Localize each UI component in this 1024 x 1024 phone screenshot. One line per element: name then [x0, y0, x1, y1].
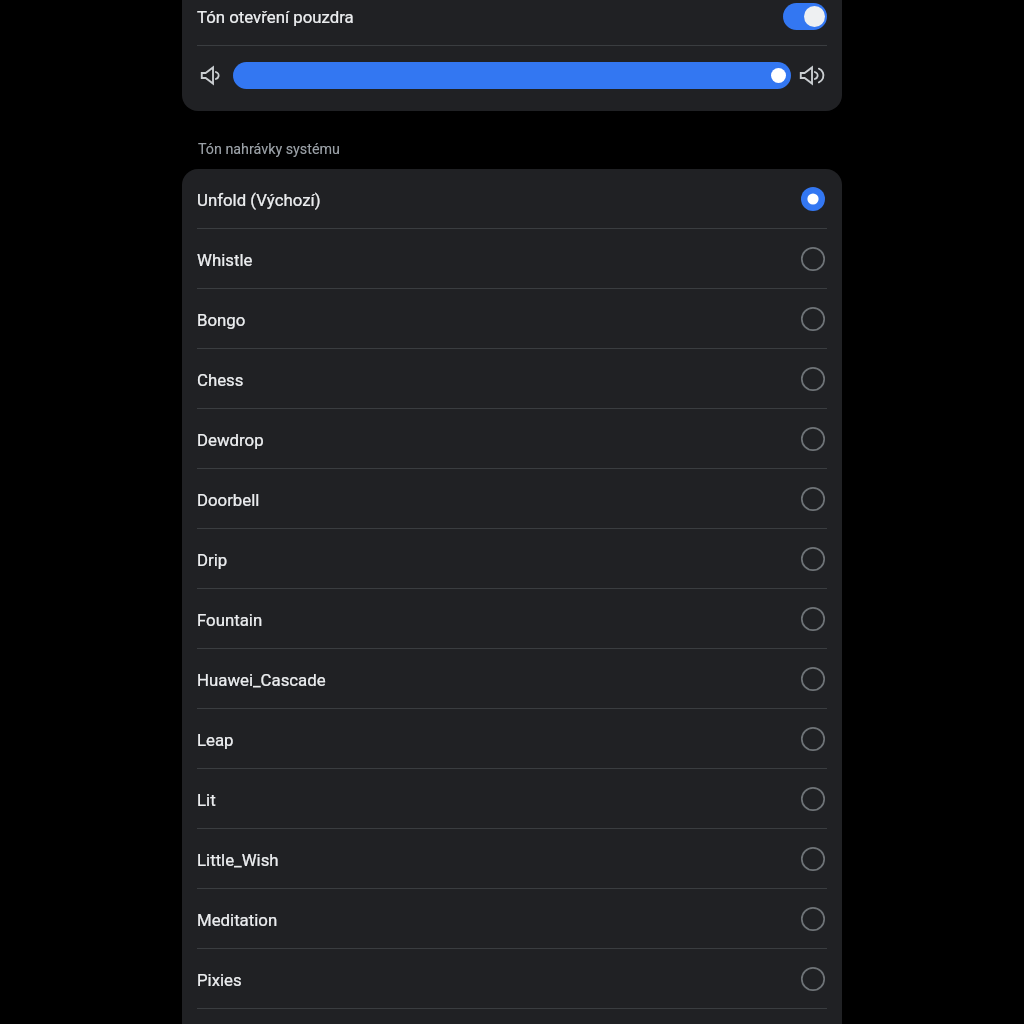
button[interactable]: Pixies — [182, 949, 842, 1009]
staticText: Chess — [197, 370, 793, 390]
button[interactable]: Select Dewdrop — [793, 419, 833, 459]
button[interactable]: Select Lit — [793, 779, 833, 819]
button[interactable]: Fountain — [182, 589, 842, 649]
staticText: Bongo — [197, 310, 793, 330]
button[interactable]: Drip — [182, 529, 842, 589]
button[interactable]: Little_Wish — [182, 829, 842, 889]
button[interactable]: Select Whistle — [793, 239, 833, 279]
button[interactable]: Select Unfold (Výchozí) — [793, 179, 833, 219]
button[interactable]: Dewdrop — [182, 409, 842, 469]
button[interactable]: Select Huawei_Cascade — [793, 659, 833, 699]
button[interactable]: Select Chess — [793, 359, 833, 399]
staticText: Whistle — [197, 250, 793, 270]
button[interactable]: Select Leap — [793, 719, 833, 759]
staticText: Tón otevření pouzdra — [197, 7, 783, 27]
button[interactable]: Select Bongo — [793, 299, 833, 339]
staticText: Fountain — [197, 610, 793, 630]
staticText: Pixies — [197, 970, 793, 990]
button[interactable]: Select Doorbell — [793, 479, 833, 519]
button[interactable]: Chess — [182, 349, 842, 409]
staticText: Tón nahrávky systému — [198, 141, 340, 158]
button[interactable]: Select Fountain — [793, 599, 833, 639]
staticText: Dewdrop — [197, 430, 793, 450]
staticText: Meditation — [197, 910, 793, 930]
button[interactable]: Select Meditation — [793, 899, 833, 939]
button[interactable]: Huawei_Cascade — [182, 649, 842, 709]
staticText: Doorbell — [197, 490, 793, 510]
button[interactable]: Unfold (Výchozí) — [182, 169, 842, 229]
button[interactable]: Select Pixies — [793, 959, 833, 999]
button[interactable]: Tón otevření pouzdra — [182, 0, 842, 46]
button[interactable]: Volume slider — [233, 62, 791, 89]
staticText: Drip — [197, 550, 793, 570]
staticText: Unfold (Výchozí) — [197, 190, 793, 210]
staticText: Lit — [197, 790, 793, 810]
staticText: Leap — [197, 730, 793, 750]
button[interactable]: Select Little_Wish — [793, 839, 833, 879]
button[interactable]: Whistle — [182, 229, 842, 289]
staticText: Huawei_Cascade — [197, 670, 793, 690]
button[interactable]: Select Drip — [793, 539, 833, 579]
staticText: Little_Wish — [197, 850, 793, 870]
button[interactable]: Meditation — [182, 889, 842, 949]
button[interactable]: Bongo — [182, 289, 842, 349]
button[interactable]: Leap — [182, 709, 842, 769]
button[interactable]: Lit — [182, 769, 842, 829]
button[interactable]: Toggle case open tone — [783, 3, 827, 30]
button[interactable]: Doorbell — [182, 469, 842, 529]
